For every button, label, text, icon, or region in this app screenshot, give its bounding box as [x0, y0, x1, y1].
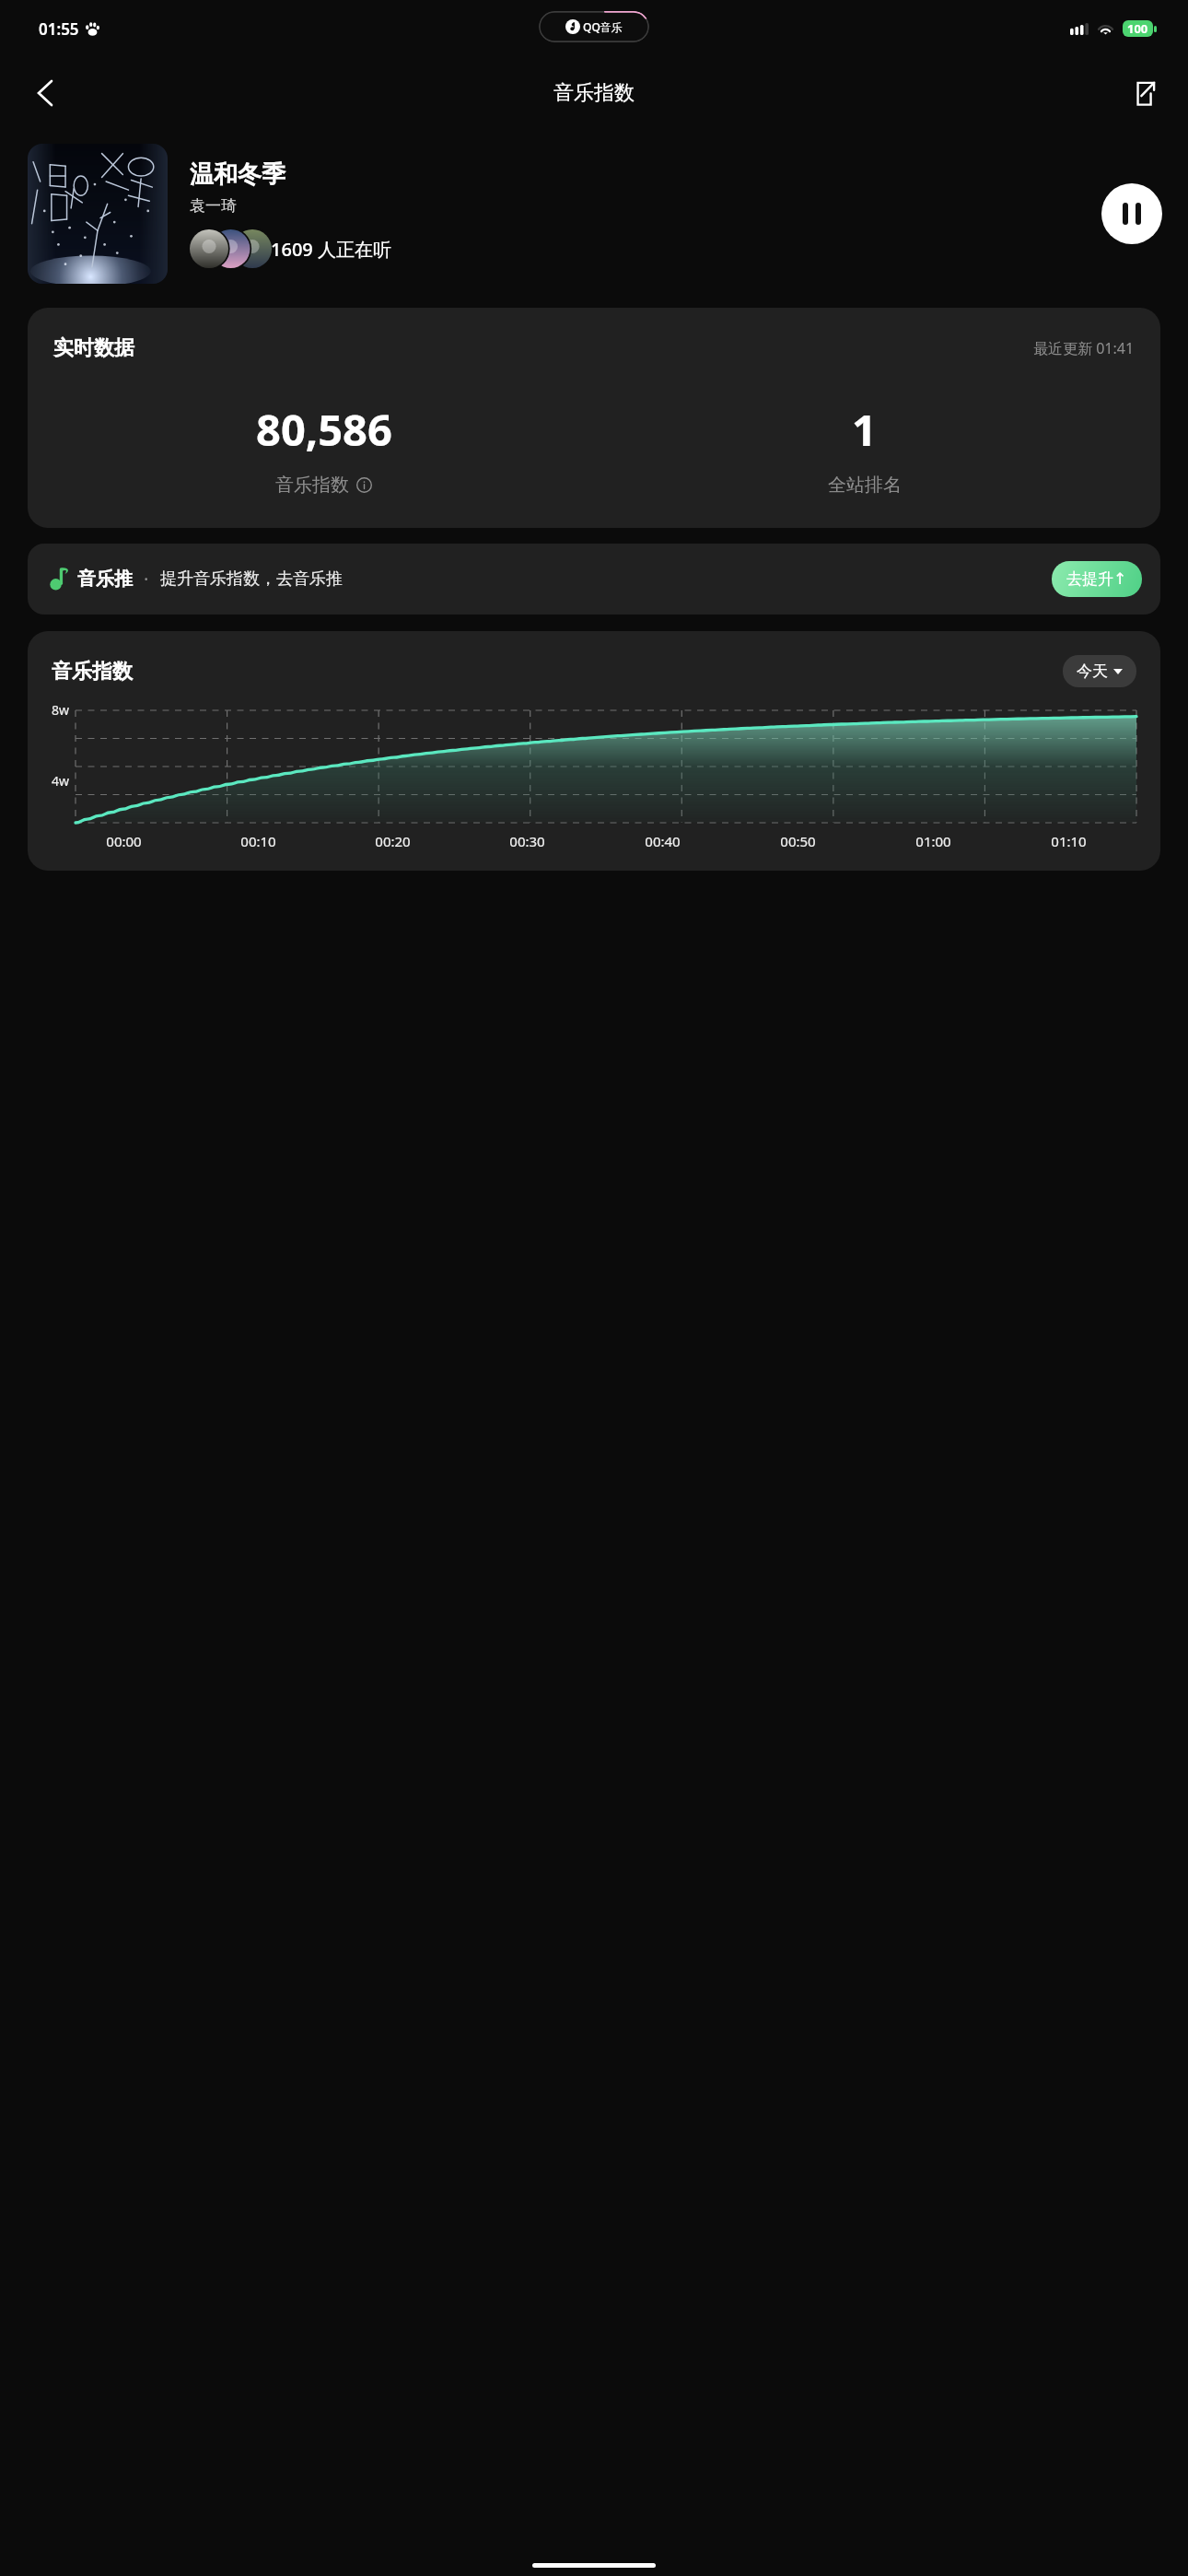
staticText: 音乐推 — [77, 568, 133, 591]
button[interactable]: Back — [20, 68, 70, 118]
staticText: 01:00 — [915, 832, 951, 850]
staticText: · — [144, 567, 149, 591]
staticText: QQ音乐 — [583, 19, 623, 34]
staticText: 全站排名 — [828, 474, 902, 497]
staticText: 00:20 — [375, 832, 411, 850]
staticText: 4w — [52, 772, 70, 790]
staticText: 音乐指数 — [553, 80, 635, 106]
staticText: 00:00 — [106, 832, 142, 850]
staticText: 00:10 — [240, 832, 276, 850]
staticText: 音乐指数 — [52, 659, 133, 685]
button[interactable]: 实时数据 — [28, 308, 1160, 528]
staticText: 最近更新 01:41 — [1033, 338, 1135, 358]
staticText: 提升音乐指数，去音乐推 — [160, 568, 343, 590]
button[interactable]: 去提升↑ — [1052, 561, 1142, 597]
staticText: 01:10 — [1051, 832, 1087, 850]
staticText: 去提升↑ — [1066, 569, 1127, 589]
staticText: 温和冬季 — [190, 159, 285, 190]
staticText: 80,586 — [256, 400, 392, 459]
staticText: 今天 — [1077, 662, 1108, 681]
staticText: 8w — [52, 701, 70, 719]
button[interactable] — [28, 144, 168, 284]
staticText: 1 — [852, 400, 877, 459]
staticText: 00:40 — [645, 832, 681, 850]
staticText: 00:30 — [509, 832, 545, 850]
staticText: 1609 人正在听 — [271, 237, 391, 262]
staticText: 实时数据 — [53, 335, 134, 361]
button[interactable]: 音乐推 — [28, 544, 1160, 615]
button[interactable]: Share — [1118, 68, 1168, 118]
staticText: 01:55 — [39, 18, 79, 40]
staticText: 100 — [1127, 20, 1148, 37]
staticText: 00:50 — [780, 832, 816, 850]
button[interactable]: 今天 — [1063, 655, 1136, 687]
staticText: 袁一琦 — [190, 196, 237, 216]
button[interactable]: Pause — [1101, 183, 1162, 244]
staticText: 音乐指数 — [275, 474, 349, 497]
